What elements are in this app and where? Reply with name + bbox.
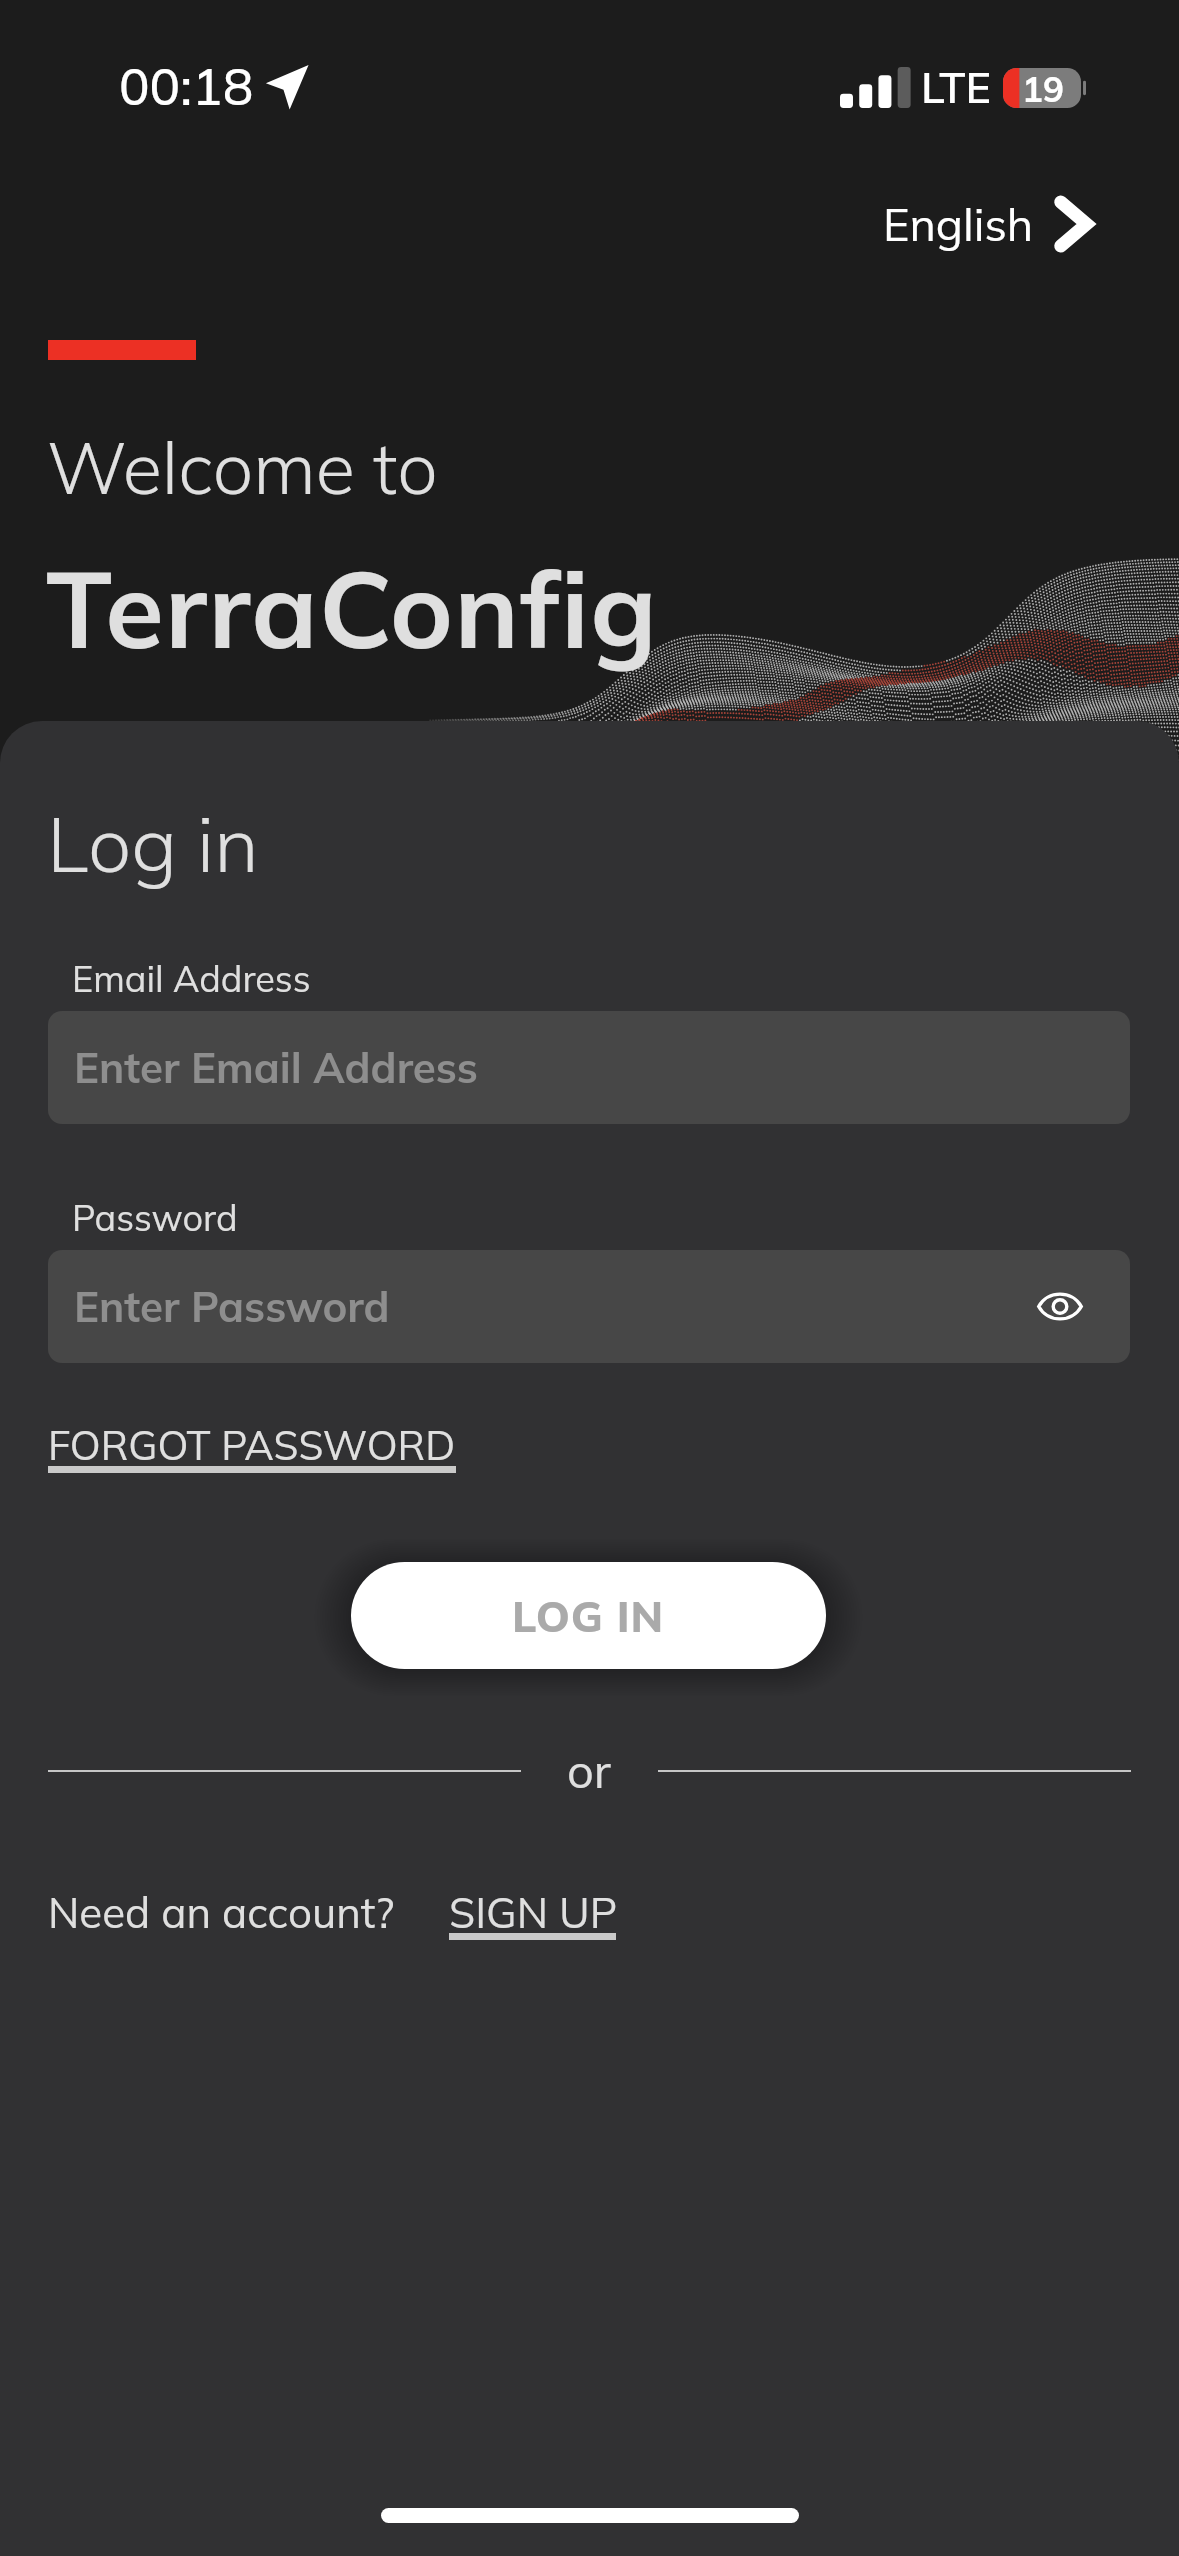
- staticText: or: [567, 1741, 611, 1800]
- staticText: 00:18: [119, 54, 254, 118]
- staticText: Password: [72, 1195, 238, 1240]
- staticText: LTE: [921, 60, 991, 114]
- button[interactable]: English: [875, 186, 1098, 262]
- button[interactable]: LOG IN: [351, 1562, 826, 1669]
- button[interactable]: Show password: [1025, 1271, 1095, 1341]
- staticText: TerraConfig: [46, 540, 659, 674]
- staticText: 19: [1022, 67, 1065, 107]
- button[interactable]: Enter Password: [48, 1250, 1130, 1363]
- button[interactable]: SIGN UP: [449, 1886, 618, 1939]
- staticText: Need an account?: [48, 1886, 395, 1939]
- staticText: Welcome to: [47, 422, 438, 512]
- button[interactable]: FORGOT PASSWORD: [48, 1420, 456, 1470]
- staticText: English: [883, 196, 1034, 252]
- staticText: Email Address: [72, 956, 311, 1001]
- staticText: LOG IN: [512, 1589, 665, 1643]
- button[interactable]: Enter Email Address: [48, 1011, 1130, 1124]
- staticText: FORGOT PASSWORD: [48, 1420, 456, 1470]
- staticText: Log in: [47, 795, 259, 892]
- staticText: Enter Password: [74, 1280, 390, 1333]
- staticText: SIGN UP: [449, 1886, 618, 1939]
- staticText: Enter Email Address: [74, 1041, 478, 1094]
